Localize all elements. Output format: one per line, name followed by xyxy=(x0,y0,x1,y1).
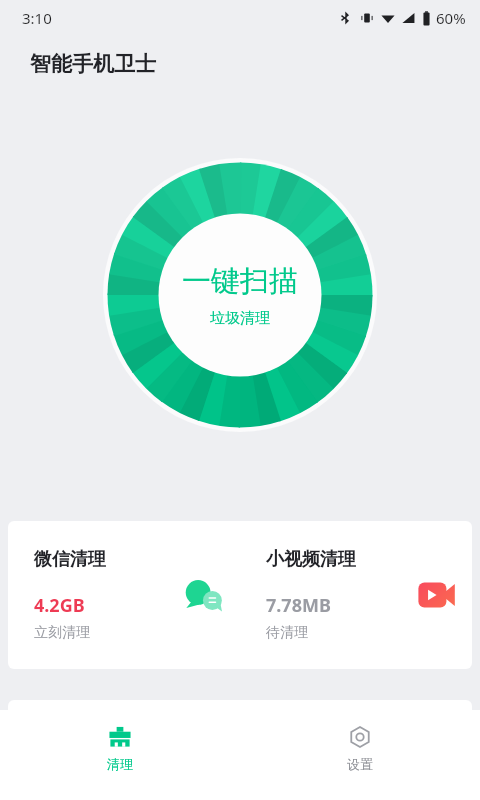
staticText: 7.78MB xyxy=(266,593,331,618)
staticText: 垃圾清理 xyxy=(210,309,270,328)
button[interactable]: 设置 xyxy=(329,722,391,774)
staticText: 4.2GB xyxy=(34,593,85,618)
other: 设置 xyxy=(348,725,372,749)
staticText: 60% xyxy=(436,8,466,28)
button[interactable]: 一键扫描 xyxy=(103,158,377,432)
staticText: 立刻清理 xyxy=(34,624,90,642)
button[interactable]: 小视频清理 xyxy=(240,521,472,669)
staticText: 3:10 xyxy=(22,8,52,28)
staticText: 一键扫描 xyxy=(182,263,298,300)
staticText: 清理 xyxy=(107,756,133,772)
staticText: 微信清理 xyxy=(34,548,106,571)
staticText: 智能手机卫士 xyxy=(30,51,156,77)
staticText: 设置 xyxy=(347,756,373,772)
button[interactable]: 微信清理 xyxy=(8,521,240,669)
button[interactable]: 清理 xyxy=(89,722,151,774)
staticText: 待清理 xyxy=(266,624,308,642)
other: 清理 xyxy=(108,725,132,749)
staticText: 小视频清理 xyxy=(266,548,356,571)
